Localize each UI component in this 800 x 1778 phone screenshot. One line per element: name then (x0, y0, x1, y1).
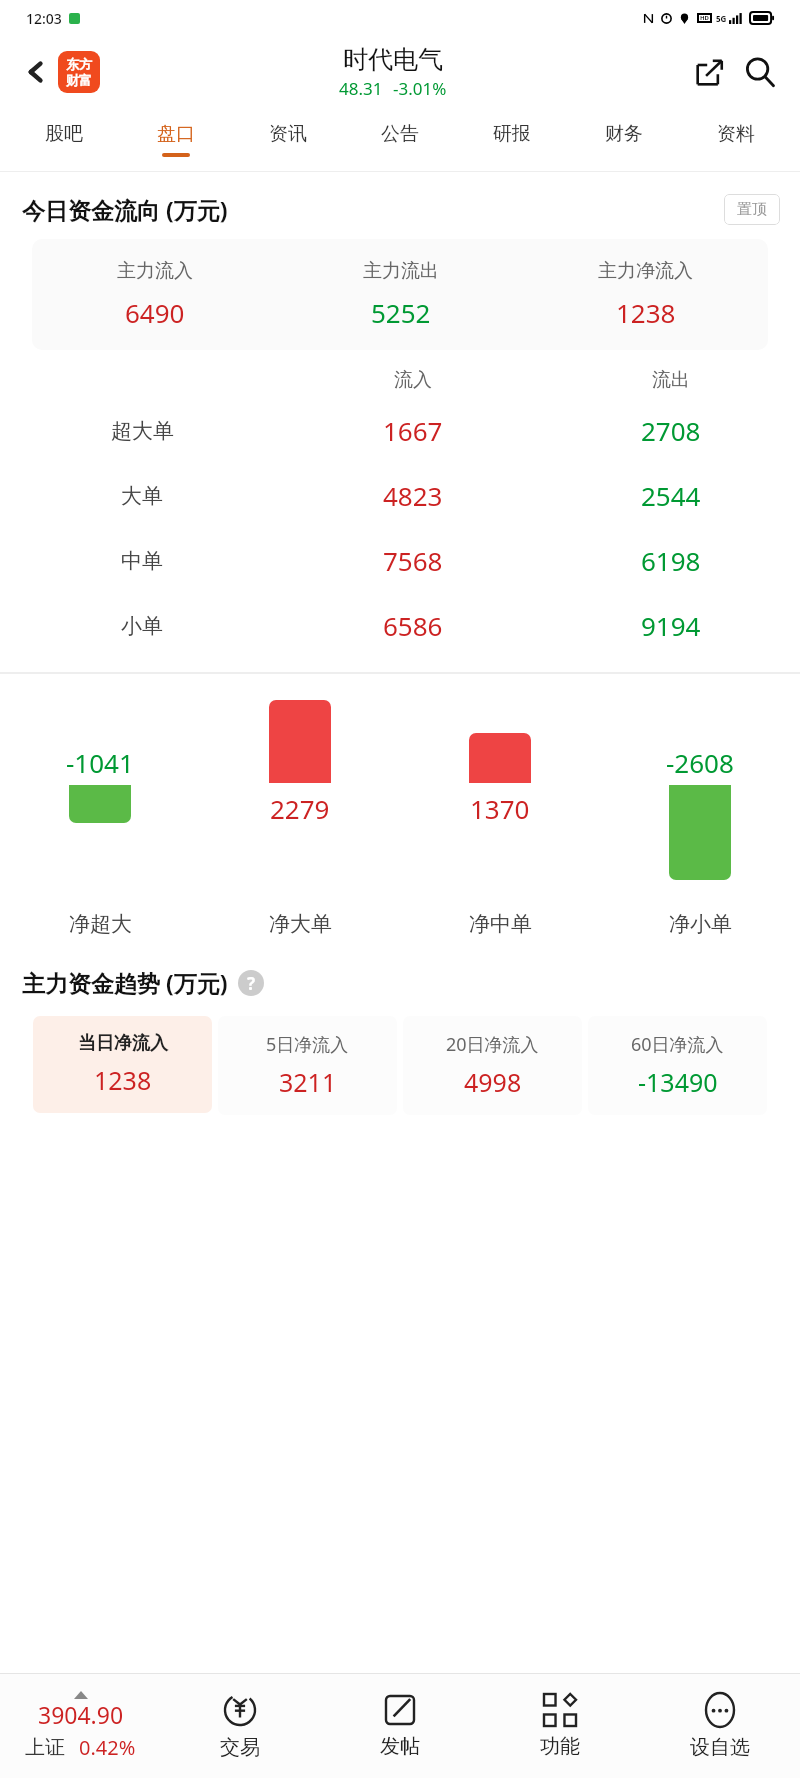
staticText: 大单 (121, 483, 163, 509)
staticText: 净小单 (669, 911, 732, 937)
staticText: 东方 (66, 56, 92, 72)
staticText: 1370 (470, 791, 530, 826)
staticText: 7568 (383, 543, 443, 578)
staticText: 3211 (279, 1065, 337, 1099)
staticText: 财富 (66, 72, 92, 88)
staticText: 1238 (616, 295, 676, 330)
staticText: 6490 (125, 295, 185, 330)
staticText: 流出 (652, 368, 690, 392)
button[interactable]: 小单 (0, 593, 800, 658)
staticText: 5日净流入 (266, 1032, 349, 1057)
button[interactable]: 交易 (160, 1674, 320, 1778)
staticText: 5252 (371, 295, 431, 330)
staticText: -1041 (66, 745, 134, 780)
staticText: 设自选 (690, 1735, 750, 1760)
staticText: 主力流入 (117, 259, 193, 283)
staticText: 4998 (464, 1065, 522, 1099)
staticText: 6586 (383, 608, 443, 643)
button[interactable]: Help (238, 970, 264, 996)
button[interactable]: 功能 (480, 1674, 640, 1778)
button[interactable]: 5日净流入 (218, 1016, 397, 1115)
staticText: 净超大 (69, 911, 132, 937)
staticText: 48.31 (339, 77, 383, 100)
button[interactable]: 发帖 (320, 1674, 480, 1778)
button[interactable]: 20日净流入 (403, 1016, 582, 1115)
staticText: 6198 (641, 543, 701, 578)
staticText: 时代电气 (343, 44, 443, 75)
staticText: 功能 (540, 1734, 580, 1759)
staticText: 交易 (220, 1735, 260, 1760)
button[interactable]: 置顶 (724, 194, 780, 225)
staticText: -3.01% (393, 77, 447, 100)
staticText: 3904.90 (38, 1699, 124, 1730)
staticText: 12:03 (26, 9, 62, 28)
button[interactable]: 股吧 (8, 108, 120, 170)
button[interactable]: 当日净流入 (33, 1016, 212, 1113)
button[interactable]: Search (734, 46, 786, 98)
staticText: 主力净流入 (598, 259, 693, 283)
button[interactable]: 设自选 (640, 1674, 800, 1778)
button[interactable]: 盘口 (120, 108, 232, 170)
staticText: HD (700, 14, 709, 22)
button[interactable]: 3904.90 (0, 1674, 160, 1778)
button[interactable]: 大单 (0, 463, 800, 528)
staticText: 发帖 (380, 1734, 420, 1759)
staticText: 公告 (381, 122, 419, 146)
staticText: 盘口 (157, 122, 195, 146)
staticText: 财务 (605, 122, 643, 146)
staticText: 1667 (383, 413, 443, 448)
button[interactable]: 60日净流入 (588, 1016, 767, 1115)
staticText: 股吧 (45, 122, 83, 146)
staticText: 60日净流入 (631, 1032, 724, 1057)
staticText: 2279 (270, 791, 330, 826)
button[interactable]: 研报 (456, 108, 568, 170)
button[interactable]: Share (686, 48, 734, 96)
staticText: 主力流出 (363, 259, 439, 283)
button[interactable]: Back (14, 50, 58, 94)
staticText: 中单 (121, 548, 163, 574)
staticText: 净大单 (269, 911, 332, 937)
staticText: 研报 (493, 122, 531, 146)
staticText: 9194 (641, 608, 701, 643)
staticText: 4823 (383, 478, 443, 513)
staticText: ? (247, 972, 256, 995)
staticText: 上证 (25, 1735, 65, 1760)
button[interactable]: East Money (58, 51, 100, 93)
staticText: 2544 (641, 478, 701, 513)
staticText: 流入 (394, 368, 432, 392)
staticText: 1238 (94, 1063, 152, 1097)
staticText: 主力资金趋势 (万元) (22, 967, 228, 998)
staticText: 5G (716, 13, 727, 24)
staticText: 0.42% (79, 1734, 136, 1761)
staticText: 当日净流入 (78, 1032, 168, 1055)
staticText: 20日净流入 (446, 1032, 539, 1057)
staticText: 资料 (717, 122, 755, 146)
staticText: 小单 (121, 613, 163, 639)
staticText: 置顶 (737, 200, 767, 219)
button[interactable]: 公告 (344, 108, 456, 170)
button[interactable]: 财务 (568, 108, 680, 170)
staticText: 今日资金流向 (万元) (22, 194, 228, 225)
staticText: 资讯 (269, 122, 307, 146)
button[interactable]: 资讯 (232, 108, 344, 170)
staticText: -2608 (666, 745, 734, 780)
button[interactable]: 中单 (0, 528, 800, 593)
button[interactable]: 资料 (680, 108, 792, 170)
button[interactable]: 超大单 (0, 398, 800, 463)
staticText: 超大单 (111, 418, 174, 444)
staticText: -13490 (638, 1065, 718, 1099)
staticText: 2708 (641, 413, 701, 448)
staticText: 净中单 (469, 911, 532, 937)
